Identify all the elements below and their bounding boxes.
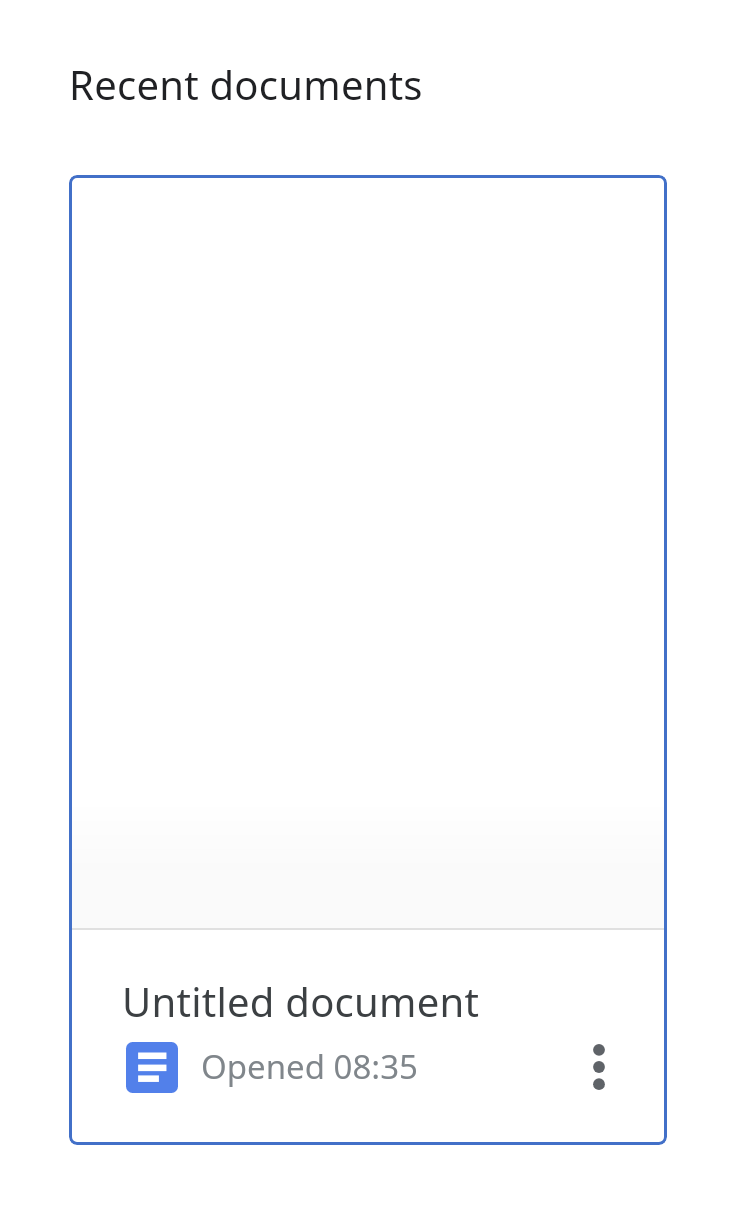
staticText: Opened 08:35 — [201, 1044, 418, 1089]
button[interactable]: More options — [563, 1031, 635, 1103]
staticText: Recent documents — [69, 57, 423, 111]
button[interactable]: Untitled document — [69, 175, 667, 1145]
staticText: Untitled document — [122, 974, 480, 1028]
